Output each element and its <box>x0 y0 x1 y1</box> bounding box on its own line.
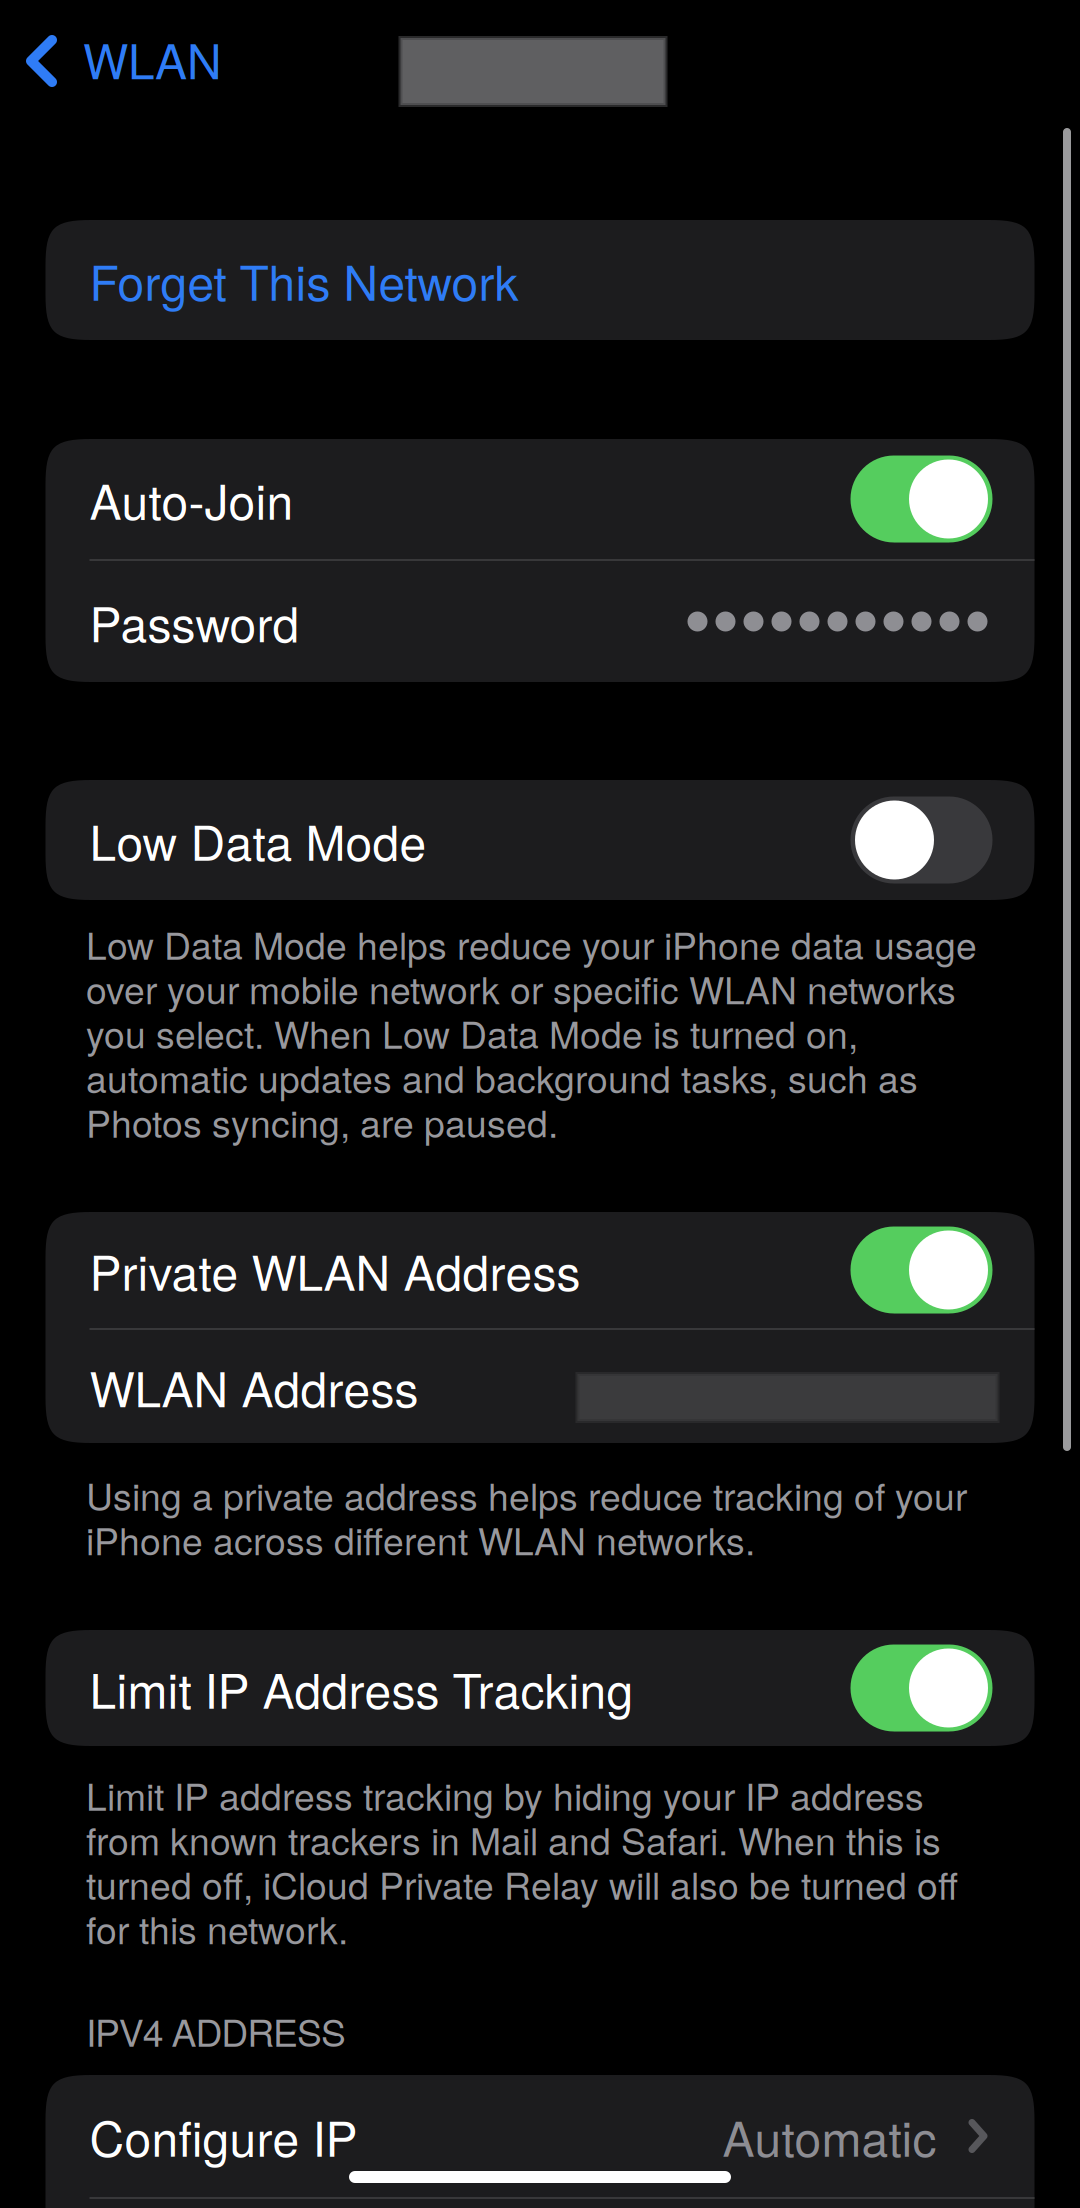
staticText: Limit IP Address Tracking <box>89 1654 633 1722</box>
staticText: Automatic <box>722 2102 936 2170</box>
staticText: WLAN <box>83 24 222 93</box>
staticText: WLAN Address <box>89 1352 418 1421</box>
staticText: Auto-Join <box>89 465 293 533</box>
staticText: Password <box>89 587 299 656</box>
button[interactable]: Low Data Mode <box>45 780 1034 900</box>
staticText: Private WLAN Address <box>89 1236 580 1304</box>
button[interactable]: WLAN <box>0 3 242 127</box>
button[interactable]: Auto-Join <box>45 439 1034 559</box>
staticText: Using a private address helps reduce tra… <box>86 1468 967 1566</box>
staticText: Configure IP <box>89 2102 357 2170</box>
staticText: Low Data Mode <box>89 806 426 874</box>
button[interactable]: WLAN Address <box>45 1330 1034 1443</box>
staticText: Limit IP address tracking by hiding your… <box>86 1768 958 1955</box>
staticText: Low Data Mode helps reduce your iPhone d… <box>86 917 977 1148</box>
staticText: Forget This Network <box>89 246 518 314</box>
staticText: IPV4 ADDRESS <box>86 2004 346 2057</box>
button[interactable]: Limit IP Address Tracking <box>45 1630 1034 1746</box>
button[interactable]: Password <box>45 561 1034 682</box>
button[interactable]: Configure IP <box>45 2075 1034 2197</box>
button[interactable]: Forget This Network <box>45 220 1034 340</box>
button[interactable]: Private WLAN Address <box>45 1212 1034 1328</box>
